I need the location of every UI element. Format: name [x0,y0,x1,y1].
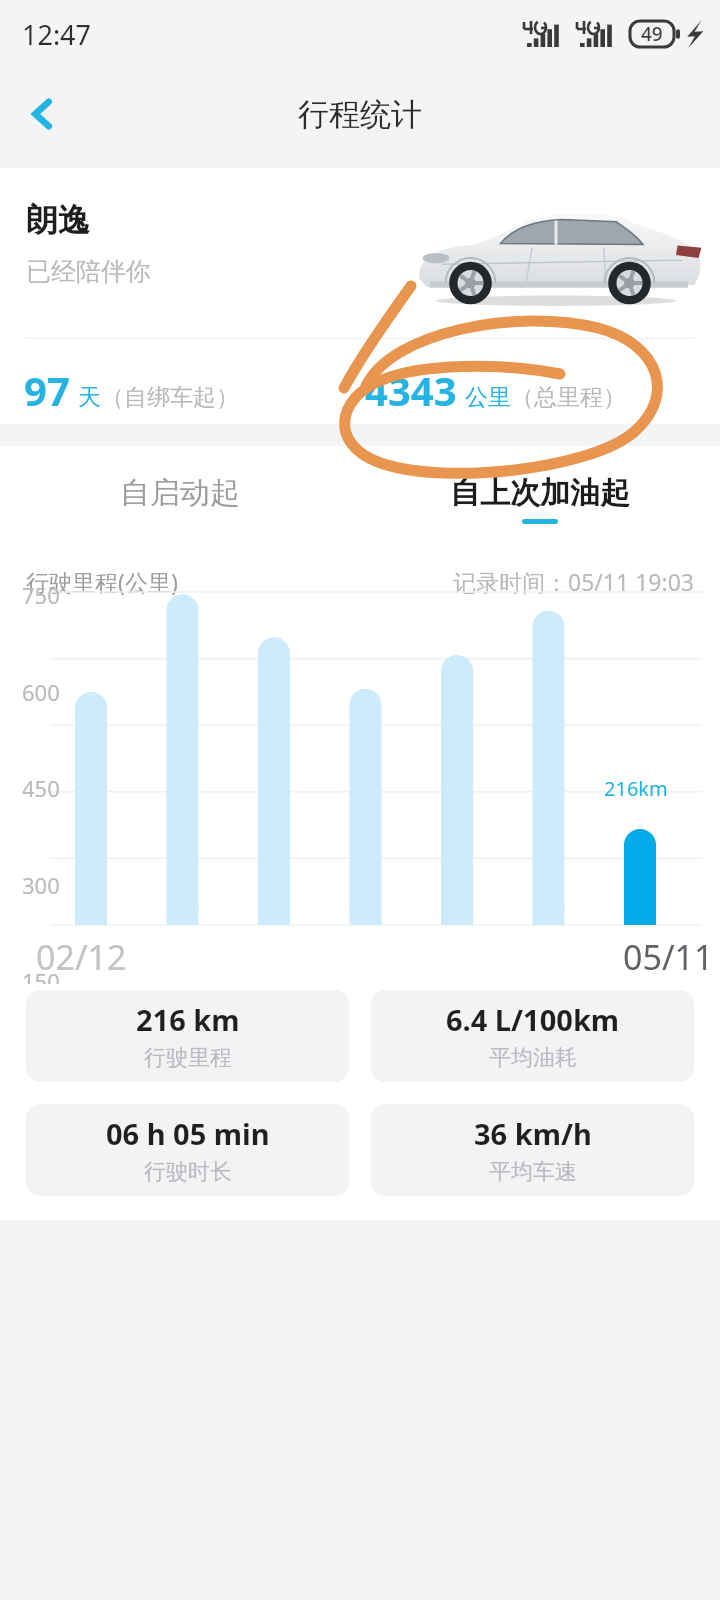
staticText: 97 [24,363,70,417]
button[interactable]: 自上次加油起 [360,446,720,552]
staticText: 0 [22,1063,35,1093]
staticText: 平均车速 [489,1158,577,1186]
staticText: 朗逸 [26,200,90,240]
staticText: 12:47 [22,16,92,53]
staticText: 06 h 05 min [106,1114,270,1153]
staticText: 02/12 [36,934,127,980]
staticText: 450 [22,773,60,803]
staticText: 216km [604,775,668,802]
staticText: 记录时间：05/11 19:03 [453,566,694,597]
staticText: 公里 [465,383,511,412]
staticText: 已经陪伴你 [26,256,151,287]
staticText: 05/11 [623,934,714,980]
button[interactable]: 216 km [26,990,349,1082]
staticText: 36 km/h [474,1114,592,1153]
staticText: 平均油耗 [489,1044,577,1072]
staticText: 6.4 L/100km [446,1000,620,1039]
staticText: 行驶里程(公里) [26,566,178,597]
button[interactable]: Back [0,72,84,156]
staticText: 行驶时长 [144,1158,232,1186]
staticText: 自启动起 [120,474,240,512]
button[interactable]: 36 km/h [371,1104,694,1196]
staticText: 49 [641,21,663,47]
staticText: （自绑车起） [101,383,239,412]
staticText: 216 km [136,1000,240,1039]
staticText: 750 [22,580,60,610]
button[interactable]: 自启动起 [0,446,360,552]
staticText: 300 [22,870,60,900]
staticText: （总里程） [511,383,626,412]
staticText: 150 [22,966,60,996]
staticText: 行程统计 [298,95,422,134]
staticText: 4343 [365,363,457,417]
staticText: 行驶里程 [144,1044,232,1072]
staticText: 600 [22,677,60,707]
staticText: 自上次加油起 [450,474,630,512]
staticText: 天 [78,383,101,412]
button[interactable]: 6.4 L/100km [371,990,694,1082]
button[interactable]: 06 h 05 min [26,1104,349,1196]
